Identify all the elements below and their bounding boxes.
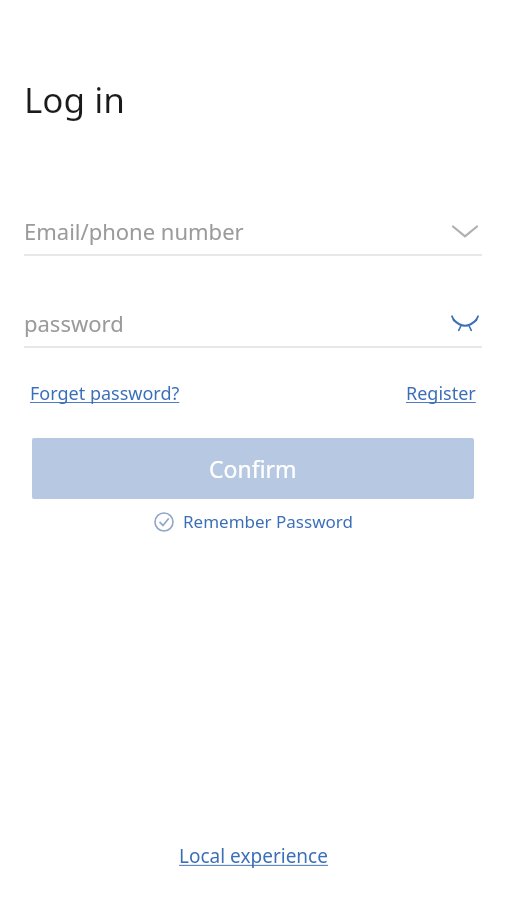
button[interactable]: Email/phone number [24,208,482,254]
button[interactable]: Show password [448,306,482,340]
staticText: Email/phone number [24,216,244,246]
button[interactable]: Confirm [32,438,474,499]
button[interactable]: Remember Password [154,510,353,533]
button[interactable]: Show account list [448,214,482,248]
staticText: password [24,308,124,338]
button[interactable]: password [24,300,482,346]
button[interactable]: Forget password? [30,381,180,406]
staticText: Confirm [209,453,297,484]
staticText: Remember Password [183,510,353,533]
staticText: Log in [24,76,125,124]
button[interactable]: Local experience [179,843,328,869]
button[interactable]: Register [406,381,476,406]
